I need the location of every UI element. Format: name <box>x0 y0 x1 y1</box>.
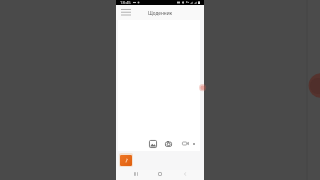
button[interactable]: More options <box>192 142 196 146</box>
staticText: Щоденник <box>148 10 173 16</box>
button[interactable]: Back <box>181 169 189 179</box>
button[interactable]: Add image <box>147 138 158 149</box>
button[interactable]: Recents <box>132 169 140 179</box>
button[interactable]: New entry <box>120 155 132 166</box>
button[interactable]: Record video <box>180 138 191 149</box>
button[interactable]: Menu <box>119 5 133 19</box>
button[interactable]: Take photo <box>163 138 174 149</box>
button[interactable]: Home <box>156 169 164 179</box>
staticText: 18:45 <box>120 0 131 5</box>
